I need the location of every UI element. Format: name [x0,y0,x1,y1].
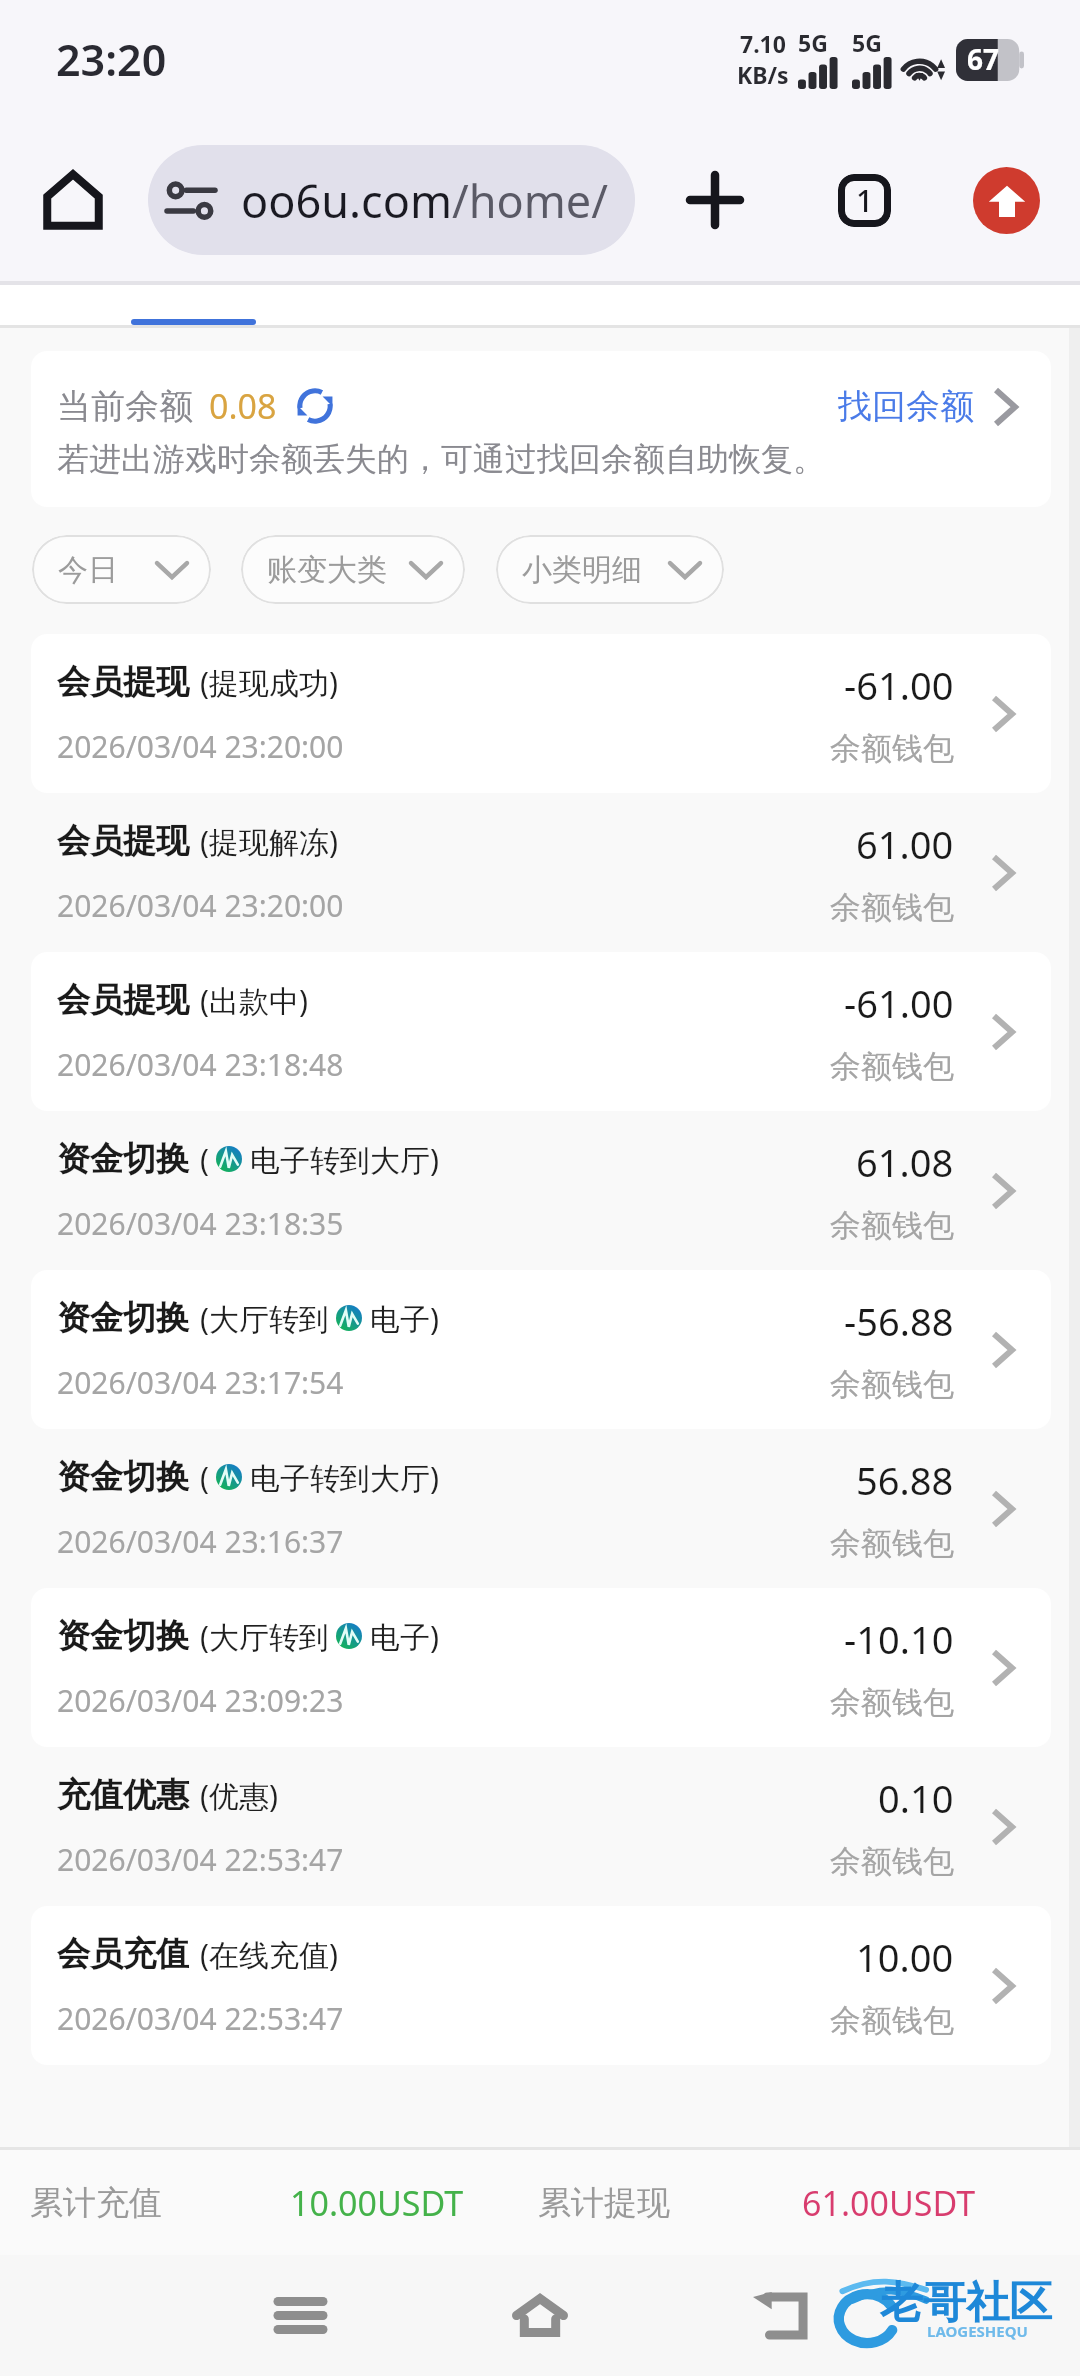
button[interactable]: 今日 [32,535,211,604]
staticText: 余额钱包 [830,1524,954,1563]
staticText: 61.08 [856,1136,954,1188]
staticText: 今日 [58,551,118,589]
staticText: 会员提现 [57,979,189,1021]
staticText: oo6u.com/home/m [241,170,635,231]
staticText: 2026/03/04 23:20:00 [57,726,344,767]
staticText: (大厅转到 [200,1298,329,1339]
staticText: LAOGESHEQU [927,2321,1028,2341]
staticText: 余额钱包 [830,1683,954,1722]
staticText: ( [200,1457,209,1498]
staticText: 56.88 [856,1454,954,1506]
button[interactable]: 当前余额 [31,351,1051,507]
staticText: (大厅转到 [200,1616,329,1657]
staticText: 电子转到大厅) [250,1139,439,1180]
staticText: 老哥社区 [880,2276,1052,2330]
staticText: 61.00USDT [802,2180,976,2226]
staticText: 5G [852,27,882,58]
button[interactable]: Upload [973,167,1040,234]
button[interactable]: 找回余额 [838,385,1018,428]
button[interactable]: New tab [665,150,765,250]
staticText: (提现解冻) [200,821,338,862]
staticText: 资金切换 [57,1456,189,1498]
staticText: 2026/03/04 22:53:47 [57,1839,344,1880]
staticText: 找回余额 [838,385,974,428]
button[interactable]: 小类明细 [496,535,724,604]
button[interactable]: 账变大类 [241,535,465,604]
staticText: 资金切换 [57,1615,189,1657]
staticText: 会员提现 [57,661,189,703]
staticText: 61.00 [856,818,954,870]
staticText: -10.10 [844,1613,954,1665]
staticText: 累计提现 [538,2182,670,2224]
button[interactable]: 会员提现 [31,793,1051,952]
staticText: 电子) [370,1298,439,1339]
button[interactable]: 资金切换 [31,1111,1051,1270]
staticText: 余额钱包 [830,729,954,768]
staticText: 小类明细 [522,551,642,589]
staticText: 会员充值 [57,1933,189,1975]
staticText: 若进出游戏时余额丢失的，可通过找回余额自助恢复。 [57,439,825,479]
staticText: 余额钱包 [830,1365,954,1404]
button[interactable]: 充值优惠 [31,1747,1051,1906]
staticText: 5G [798,27,828,58]
staticText: 资金切换 [57,1138,189,1180]
staticText: 2026/03/04 22:53:47 [57,1998,344,2039]
staticText: 电子转到大厅) [250,1457,439,1498]
button[interactable]: 会员充值 [31,1906,1051,2065]
staticText: 会员提现 [57,820,189,862]
staticText: -56.88 [844,1295,954,1347]
staticText: 2026/03/04 23:20:00 [57,885,344,926]
button[interactable]: Home [480,2255,600,2376]
staticText: 资金切换 [57,1297,189,1339]
staticText: 2026/03/04 23:17:54 [57,1362,344,1403]
staticText: 余额钱包 [830,2001,954,2040]
button[interactable]: Home [28,155,118,245]
staticText: 10.00 [856,1931,954,1983]
staticText: 充值优惠 [57,1774,189,1816]
staticText: (优惠) [200,1775,278,1816]
staticText: 1 [856,180,874,221]
staticText: 累计充值 [30,2182,162,2224]
staticText: 67 [967,40,1000,78]
button[interactable]: 会员提现 [31,952,1051,1111]
staticText: 0.10 [878,1772,954,1824]
staticText: 账变大类 [267,551,387,589]
staticText: 余额钱包 [830,1842,954,1881]
staticText: 10.00USDT [290,2180,464,2226]
staticText: KB/s [737,59,789,90]
staticText: 23:20 [56,30,167,89]
button[interactable]: 会员提现 [31,634,1051,793]
staticText: ( [200,1139,209,1180]
button[interactable]: 资金切换 [31,1588,1051,1747]
button[interactable]: Back [720,2255,840,2376]
staticText: 当前余额 [57,385,193,428]
button[interactable]: 资金切换 [31,1270,1051,1429]
staticText: 余额钱包 [830,888,954,927]
button[interactable]: oo6u.com/home/m [148,145,635,255]
staticText: 7.10 [740,28,786,59]
staticText: -61.00 [844,659,954,711]
staticText: (提现成功) [200,662,338,703]
staticText: 2026/03/04 23:09:23 [57,1680,344,1721]
button[interactable]: 刷新余额 [293,384,337,428]
button[interactable]: Tabs [814,150,914,250]
staticText: 2026/03/04 23:18:35 [57,1203,344,1244]
staticText: 0.08 [209,383,277,429]
staticText: (出款中) [200,980,308,1021]
staticText: (在线充值) [200,1934,338,1975]
button[interactable]: Recents [240,2255,360,2376]
staticText: 余额钱包 [830,1206,954,1245]
staticText: 2026/03/04 23:18:48 [57,1044,344,1085]
staticText: 余额钱包 [830,1047,954,1086]
staticText: -61.00 [844,977,954,1029]
button[interactable]: 资金切换 [31,1429,1051,1588]
staticText: 电子) [370,1616,439,1657]
staticText: 2026/03/04 23:16:37 [57,1521,344,1562]
